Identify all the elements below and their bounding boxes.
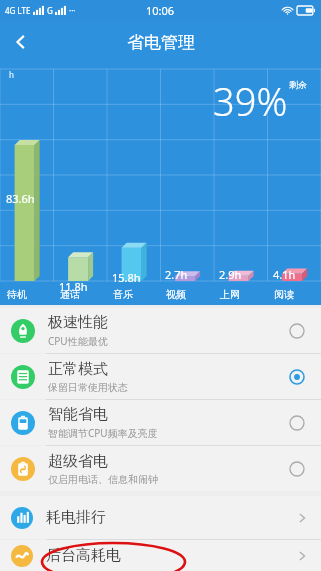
button[interactable]: 超级省电 bbox=[0, 446, 321, 491]
staticText: 10:06 bbox=[146, 3, 175, 18]
staticText: 超级省电 bbox=[48, 452, 108, 471]
staticText: 省电管理 bbox=[127, 32, 195, 53]
staticText: 智能调节CPU频率及亮度 bbox=[48, 426, 158, 440]
staticText: 音乐 bbox=[113, 288, 133, 301]
button[interactable]: 极速性能 bbox=[0, 308, 321, 353]
staticText: 4.1h bbox=[273, 267, 296, 282]
staticText: 极速性能 bbox=[48, 313, 108, 332]
button[interactable]: 正常模式 bbox=[0, 354, 321, 399]
staticText: h bbox=[9, 69, 14, 80]
button[interactable]: 耗电排行 bbox=[0, 496, 321, 539]
staticText: 待机 bbox=[7, 288, 27, 301]
staticText: 2.9h bbox=[219, 267, 242, 282]
staticText: 11.8h bbox=[59, 279, 88, 294]
button[interactable]: 正常模式 bbox=[277, 357, 317, 397]
staticText: 83.6h bbox=[6, 191, 35, 206]
staticText: 通话 bbox=[60, 288, 80, 301]
staticText: 剩余 bbox=[289, 79, 307, 90]
staticText: 39% bbox=[213, 75, 288, 127]
staticText: 阅读 bbox=[274, 288, 294, 301]
button[interactable]: 后台高耗电 bbox=[0, 540, 321, 571]
staticText: 正常模式 bbox=[48, 360, 108, 379]
staticText: CPU性能最优 bbox=[48, 334, 108, 348]
button[interactable]: 极速性能 bbox=[277, 311, 317, 351]
button[interactable]: 超级省电 bbox=[277, 449, 317, 489]
staticText: 上网 bbox=[220, 288, 240, 301]
staticText: 保留日常使用状态 bbox=[48, 381, 128, 394]
staticText: 智能省电 bbox=[48, 405, 108, 424]
staticText: 2.7h bbox=[165, 267, 188, 282]
staticText: 视频 bbox=[166, 288, 186, 301]
staticText: G bbox=[47, 5, 53, 16]
staticText: ··· bbox=[69, 5, 76, 16]
staticText: 仅启用电话、信息和闹钟 bbox=[48, 473, 158, 486]
staticText: 后台高耗电 bbox=[46, 546, 295, 565]
button[interactable]: 智能省电 bbox=[0, 400, 321, 445]
staticText: 4G LTE bbox=[5, 5, 31, 16]
staticText: 15.8h bbox=[112, 270, 141, 285]
staticText: 耗电排行 bbox=[46, 508, 295, 527]
button[interactable]: Back bbox=[0, 21, 42, 63]
button[interactable]: 智能省电 bbox=[277, 403, 317, 443]
